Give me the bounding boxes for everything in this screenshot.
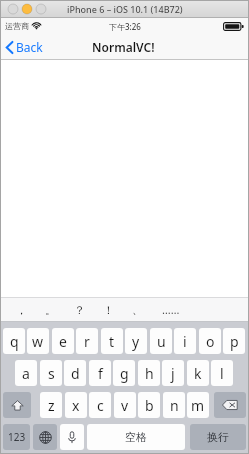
button[interactable]: ？ (66, 297, 92, 322)
staticText: 下午3:26 (109, 21, 141, 32)
button[interactable]: m (187, 392, 209, 418)
staticText: 123 (8, 430, 26, 444)
button[interactable]: ！ (95, 297, 121, 322)
button[interactable]: k (187, 360, 209, 386)
staticText: j (171, 364, 175, 383)
button[interactable]: e (52, 328, 74, 354)
staticText: d (71, 364, 80, 383)
staticText: 、 (132, 303, 143, 317)
button[interactable]: w (27, 328, 49, 354)
staticText: u (157, 332, 166, 351)
staticText: h (145, 364, 154, 383)
staticText: z (48, 396, 55, 415)
staticText: p (230, 332, 239, 351)
staticText: y (132, 332, 140, 351)
staticText: NormalVC! (92, 39, 155, 55)
staticText: s (48, 364, 55, 383)
button[interactable]: 、 (124, 297, 150, 322)
button[interactable]: i (174, 328, 196, 354)
button[interactable]: ， (8, 297, 34, 322)
button[interactable]: r (76, 328, 98, 354)
button[interactable]: h (138, 360, 160, 386)
button[interactable]: 换行 (190, 424, 246, 450)
staticText: i (183, 332, 187, 351)
button[interactable]: f (89, 360, 111, 386)
staticText: ！ (103, 303, 114, 317)
button[interactable]: b (138, 392, 160, 418)
button[interactable]: Switch keyboard (33, 424, 57, 450)
button[interactable]: Shift (3, 392, 31, 418)
button[interactable]: Dictation (60, 424, 84, 450)
staticText: r (84, 332, 90, 351)
staticText: 空格 (125, 430, 147, 444)
staticText: x (72, 396, 80, 415)
staticText: ， (16, 303, 27, 317)
staticText: a (22, 364, 30, 383)
button[interactable]: j (162, 360, 184, 386)
button[interactable]: u (150, 328, 172, 354)
staticText: n (170, 396, 179, 415)
staticText: g (120, 364, 129, 383)
button[interactable]: c (89, 392, 111, 418)
staticText: v (121, 396, 129, 415)
staticText: l (220, 364, 224, 383)
staticText: ？ (74, 303, 85, 317)
button[interactable]: p (223, 328, 245, 354)
staticText: m (191, 396, 205, 415)
staticText: f (98, 364, 103, 383)
staticText: t (109, 332, 115, 351)
staticText: iPhone 6 – iOS 10.1 (14B72) (67, 3, 183, 15)
button[interactable]: g (113, 360, 135, 386)
staticText: q (10, 332, 19, 351)
button[interactable]: y (125, 328, 147, 354)
button[interactable]: n (163, 392, 185, 418)
button[interactable]: 123 (3, 424, 30, 450)
staticText: 。 (45, 303, 56, 317)
button[interactable]: s (40, 360, 62, 386)
button[interactable]: 空格 (87, 424, 185, 450)
button[interactable]: d (64, 360, 86, 386)
button[interactable]: z (40, 392, 62, 418)
staticText: 运营商 (5, 21, 29, 31)
staticText: …… (162, 302, 180, 317)
button[interactable]: v (114, 392, 136, 418)
button[interactable]: Back (0, 35, 51, 59)
button[interactable]: a (15, 360, 37, 386)
staticText: Back (16, 39, 43, 55)
staticText: e (59, 332, 67, 351)
staticText: c (97, 396, 104, 415)
button[interactable]: t (101, 328, 123, 354)
staticText: 换行 (207, 430, 229, 444)
button[interactable]: x (65, 392, 87, 418)
button[interactable]: l (211, 360, 233, 386)
button[interactable]: 。 (37, 297, 63, 322)
button[interactable]: o (199, 328, 221, 354)
button[interactable]: …… (158, 297, 184, 322)
staticText: k (194, 364, 202, 383)
button[interactable]: q (3, 328, 25, 354)
staticText: b (145, 396, 154, 415)
staticText: o (206, 332, 215, 351)
staticText: w (32, 332, 44, 351)
button[interactable]: Backspace (214, 392, 246, 418)
